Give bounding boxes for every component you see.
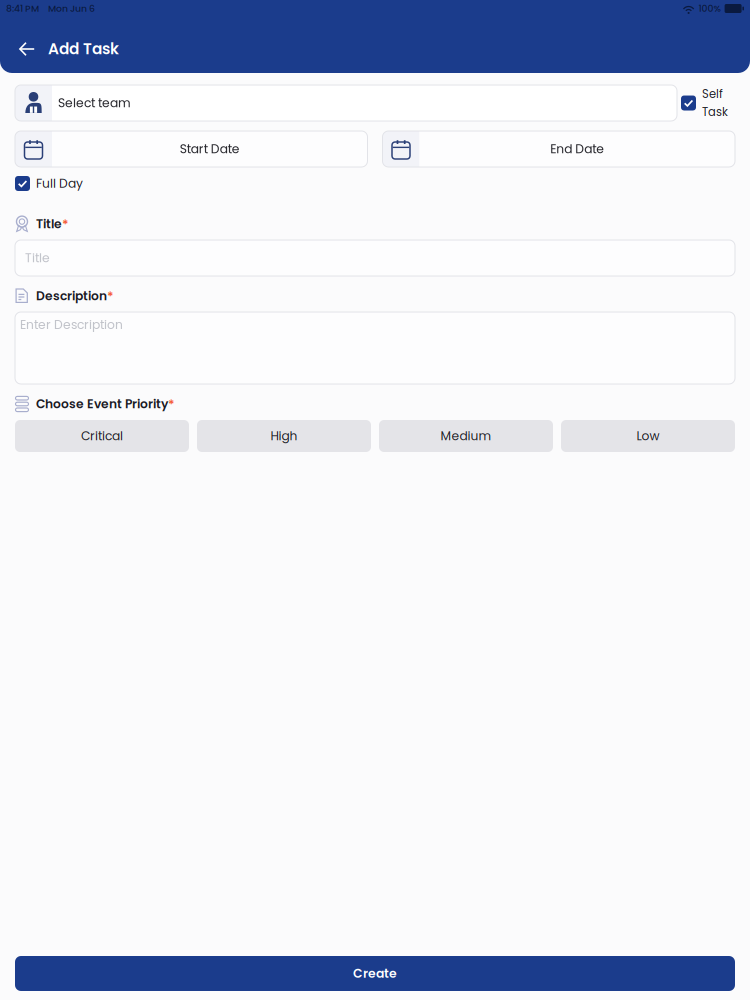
button[interactable]: Start Date [15,131,367,167]
staticText: Start Date [180,140,240,158]
staticText: * [62,215,69,233]
staticText: End Date [550,140,604,158]
button[interactable]: Back [10,34,44,64]
button[interactable]: Self [677,85,735,121]
staticText: Choose Event Priority [36,395,168,413]
button[interactable]: Critical [15,420,189,452]
staticText: * [168,395,175,413]
button[interactable]: Create [15,956,735,991]
button[interactable]: Full Day [15,176,83,191]
staticText: Title [25,249,50,267]
staticText: Description [36,287,107,305]
staticText: Title [36,215,62,233]
staticText: Self [702,86,723,102]
staticText: Mon Jun 6 [48,2,95,15]
button[interactable]: Medium [379,420,553,452]
button[interactable]: End Date [382,131,735,167]
staticText: Critical [81,427,123,445]
button[interactable]: Select team [15,85,677,121]
button[interactable]: Low [561,420,735,452]
staticText: Add Task [48,38,119,60]
staticText: Create [353,965,397,982]
staticText: Enter Description [20,316,123,333]
staticText: Select team [58,94,131,112]
staticText: Task [702,104,728,120]
staticText: 100% [699,2,721,15]
staticText: High [270,427,297,445]
staticText: Medium [440,427,491,445]
staticText: 8:41 PM [6,2,39,15]
staticText: * [107,287,114,305]
staticText: Full Day [36,175,83,192]
staticText: Low [636,427,659,445]
button[interactable]: High [197,420,371,452]
